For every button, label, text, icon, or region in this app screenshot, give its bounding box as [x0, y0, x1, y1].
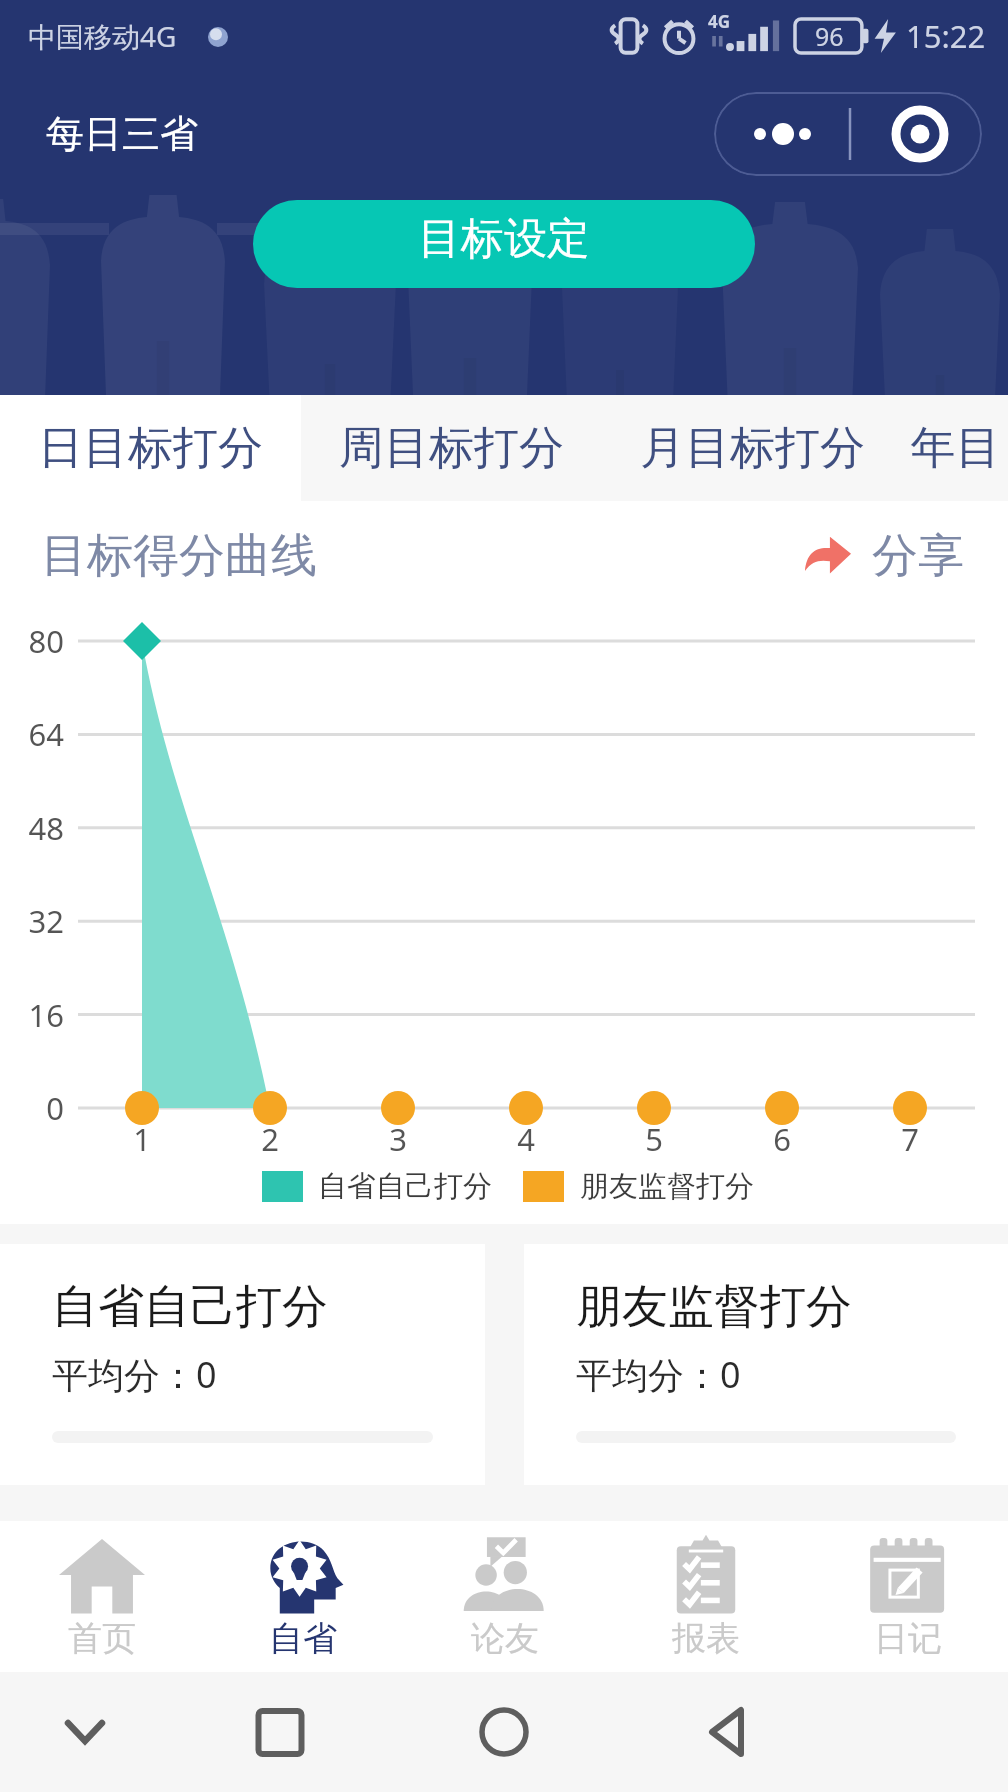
button[interactable]: 月目标打分 — [602, 395, 903, 501]
staticText: 日目标打分 — [38, 420, 263, 477]
button[interactable]: 分享 — [804, 527, 1008, 585]
staticText: 7 — [885, 1118, 935, 1160]
button[interactable]: 目标设定 — [253, 200, 755, 288]
staticText: 分享 — [872, 527, 964, 585]
staticText: 年目标打分 — [903, 420, 1008, 477]
button[interactable]: Recent apps — [195, 1682, 365, 1782]
staticText: 0 — [8, 1087, 64, 1129]
staticText: 日记 — [874, 1617, 942, 1660]
staticText: 2 — [245, 1118, 295, 1160]
staticText: 4G — [708, 10, 731, 33]
button[interactable]: 日目标打分 — [0, 395, 301, 501]
button[interactable]: Home — [419, 1682, 589, 1782]
staticText: 平均分：0 — [576, 1350, 741, 1399]
button[interactable]: Hide keyboard — [0, 1682, 170, 1782]
staticText: 目标得分曲线 — [41, 527, 317, 585]
staticText: 朋友监督打分 — [580, 1168, 754, 1205]
staticText: 16 — [8, 994, 64, 1036]
button[interactable]: 论友 — [404, 1521, 605, 1672]
staticText: 4 — [501, 1118, 551, 1160]
button[interactable]: Menu and close — [714, 92, 982, 176]
button[interactable]: 报表 — [605, 1521, 806, 1672]
staticText: 首页 — [68, 1617, 136, 1660]
staticText: 平均分：0 — [52, 1350, 217, 1399]
button[interactable]: 日记 — [807, 1521, 1008, 1672]
button[interactable]: 年目标打分 — [903, 395, 1008, 501]
staticText: 48 — [8, 807, 64, 849]
staticText: 32 — [8, 900, 64, 942]
staticText: 自省 — [269, 1617, 337, 1660]
staticText: 3 — [373, 1118, 423, 1160]
staticText: 月目标打分 — [640, 420, 865, 477]
button[interactable]: Back — [642, 1682, 812, 1782]
staticText: 周目标打分 — [339, 420, 564, 477]
staticText: 6 — [757, 1118, 807, 1160]
staticText: 64 — [8, 713, 64, 755]
button[interactable]: 朋友监督打分 — [524, 1244, 1008, 1485]
staticText: 15:22 — [906, 15, 986, 57]
staticText: 5 — [629, 1118, 679, 1160]
staticText: 1 — [117, 1118, 167, 1160]
button[interactable]: 首页 — [1, 1521, 202, 1672]
staticText: 96 — [815, 19, 844, 53]
button[interactable]: 自省 — [202, 1521, 403, 1672]
staticText: 论友 — [471, 1617, 539, 1660]
staticText: 自省自己打分 — [318, 1168, 492, 1205]
staticText: 目标设定 — [418, 212, 590, 266]
staticText: 中国移动4G — [28, 17, 177, 55]
staticText: 每日三省 — [46, 110, 198, 158]
staticText: 朋友监督打分 — [576, 1278, 852, 1336]
staticText: 自省自己打分 — [52, 1278, 328, 1336]
button[interactable]: 自省自己打分 — [0, 1244, 485, 1485]
button[interactable]: 周目标打分 — [301, 395, 602, 501]
staticText: 报表 — [672, 1617, 740, 1660]
staticText: 80 — [8, 620, 64, 662]
